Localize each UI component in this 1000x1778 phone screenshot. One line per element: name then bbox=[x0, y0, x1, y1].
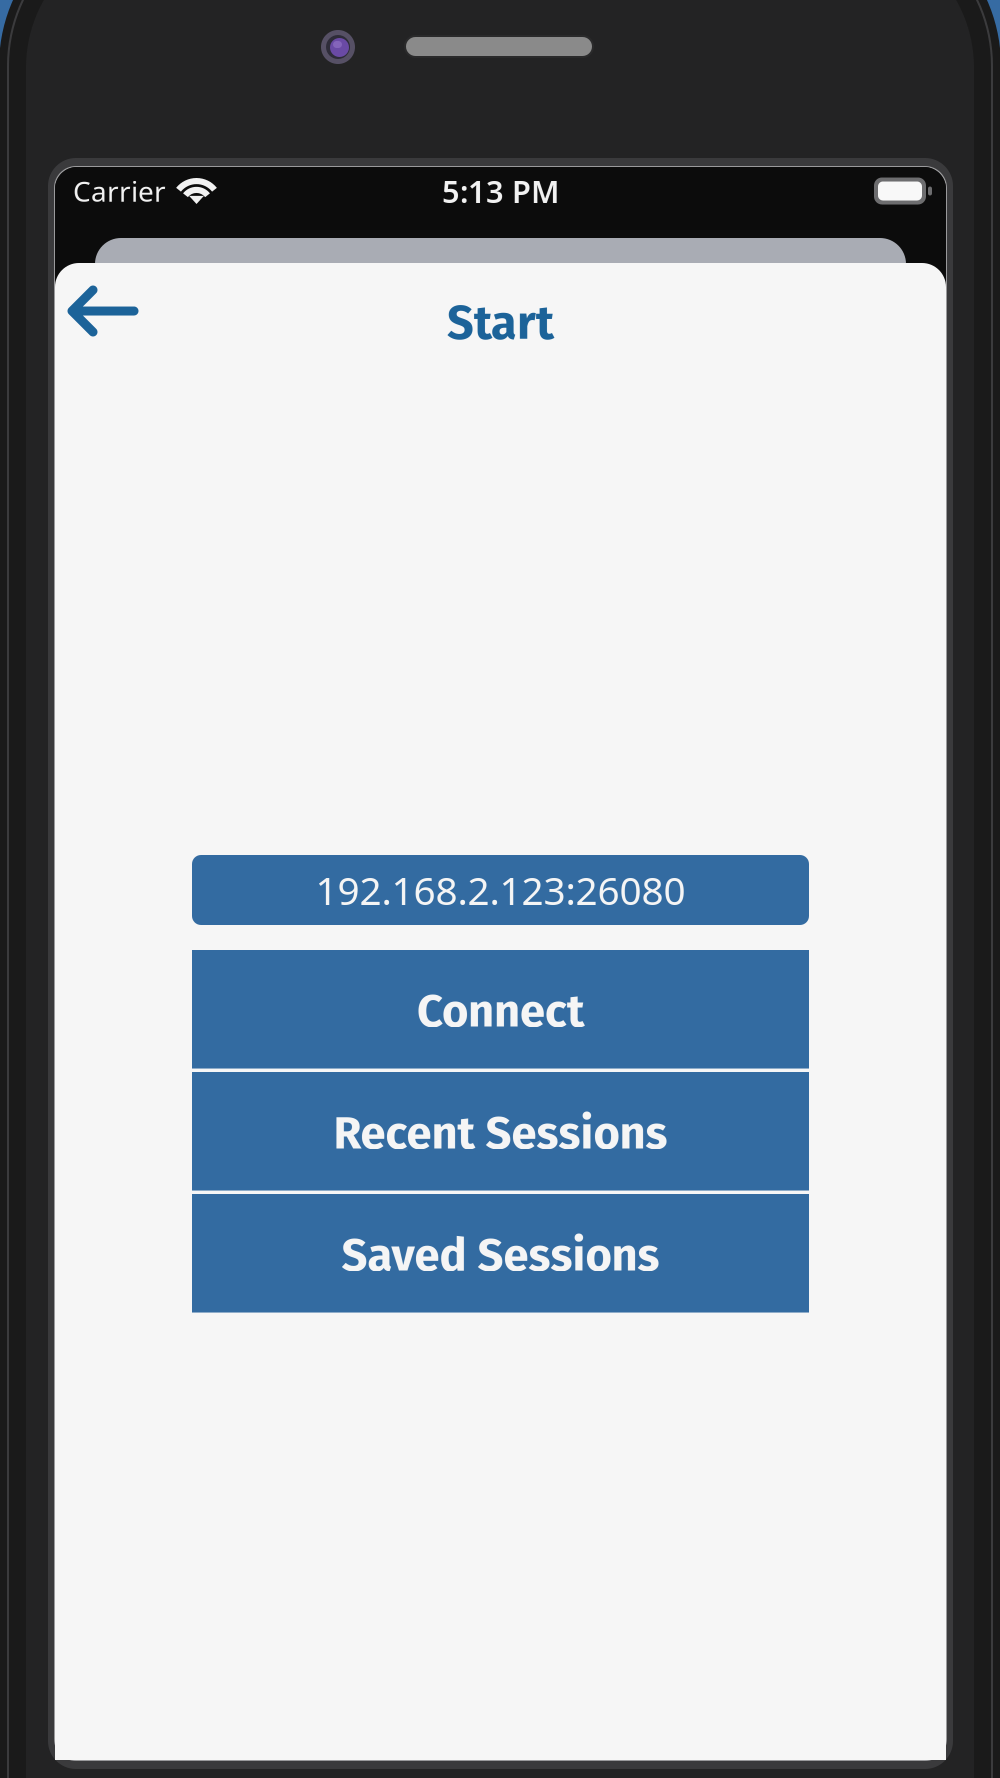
staticText: Recent Sessions bbox=[333, 1106, 667, 1160]
staticText: Connect bbox=[417, 984, 584, 1038]
staticText: Saved Sessions bbox=[341, 1228, 659, 1282]
staticText: 192.168.2.123:26080 bbox=[315, 864, 685, 916]
button[interactable]: Back bbox=[55, 270, 151, 352]
staticText: Start bbox=[447, 295, 554, 351]
button[interactable]: Connect bbox=[192, 950, 809, 1068]
button[interactable]: 192.168.2.123:26080 bbox=[192, 855, 809, 925]
button[interactable]: Saved Sessions bbox=[192, 1194, 809, 1312]
button[interactable]: Recent Sessions bbox=[192, 1072, 809, 1190]
staticText: Carrier bbox=[73, 172, 166, 210]
staticText: 5:13 PM bbox=[442, 171, 559, 211]
